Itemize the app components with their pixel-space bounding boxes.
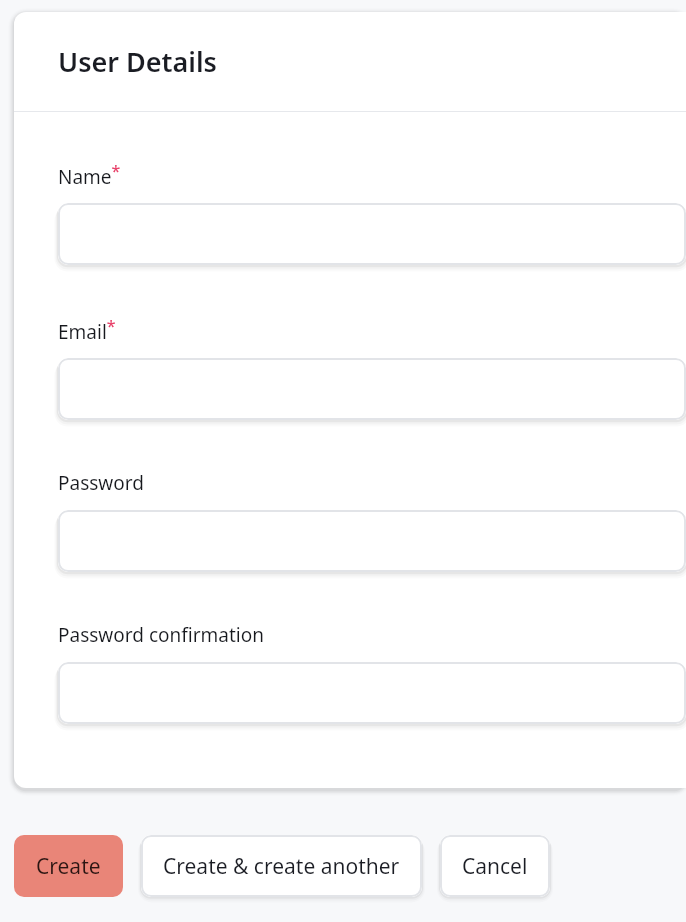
button[interactable] <box>58 662 686 724</box>
button[interactable] <box>58 510 686 572</box>
staticText: Cancel <box>462 852 528 881</box>
button[interactable]: Create <box>14 835 123 897</box>
staticText: Password <box>58 470 144 496</box>
button[interactable] <box>58 358 686 420</box>
button[interactable] <box>58 203 686 265</box>
staticText: User Details <box>58 43 217 80</box>
staticText: Create <box>36 852 101 881</box>
button[interactable]: Create & create another <box>141 835 422 897</box>
staticText: Create & create another <box>163 852 400 881</box>
staticText: Name* <box>58 160 121 189</box>
staticText: Email* <box>58 315 116 344</box>
button[interactable]: Cancel <box>440 835 550 897</box>
staticText: Password confirmation <box>58 622 264 648</box>
